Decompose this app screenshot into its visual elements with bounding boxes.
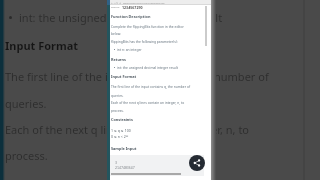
staticText: Returns <box>111 6 120 9</box>
staticText: 0 ≤ n < 2³² <box>111 134 129 139</box>
staticText: The first line of the input contains q, … <box>111 84 191 88</box>
staticText: Returns <box>111 57 126 62</box>
staticText: int: the unsigned decimal integer result <box>117 65 178 69</box>
staticText: queries. <box>111 93 124 97</box>
staticText: The first line of the input contains q, … <box>5 69 269 84</box>
staticText: ← → ↻ ⌂ www.hackerrank.com/challenges/fl… <box>111 1 165 4</box>
staticText: Each of the next q lines contain an inte… <box>5 122 250 137</box>
staticText: int: the unsigned decimal integer result <box>19 10 223 25</box>
staticText: process. <box>111 108 124 112</box>
staticText: int n: an integer <box>117 47 142 51</box>
staticText: Sample Input <box>111 146 137 151</box>
staticText: Constraints <box>111 117 133 122</box>
staticText: Each of the next q lines contain an inte… <box>111 100 185 104</box>
button[interactable]: Share <box>189 155 205 171</box>
staticText: 1 ≤ q ≤ 100 <box>111 128 131 133</box>
staticText: queries. <box>5 96 47 111</box>
staticText: 1234567290 <box>122 5 143 10</box>
staticText: flippingBits has the following parameter… <box>111 39 178 43</box>
staticText: below. <box>111 31 122 35</box>
staticText: Input Format <box>5 38 79 53</box>
staticText: Input Format <box>111 74 137 79</box>
staticText: Complete the flippingBits function in th… <box>111 24 184 28</box>
staticText: Function Description <box>111 14 151 19</box>
staticText: process. <box>5 148 48 163</box>
staticText: 2147483647 <box>115 165 135 169</box>
staticText: 3 <box>115 160 117 164</box>
